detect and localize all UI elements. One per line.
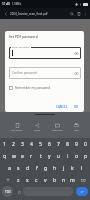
staticText: t xyxy=(40,153,42,160)
button[interactable]: Emoji xyxy=(16,189,22,195)
button[interactable]: c xyxy=(32,174,41,186)
button[interactable]: t xyxy=(36,150,45,162)
staticText: f xyxy=(36,165,38,172)
button[interactable]: j xyxy=(59,162,68,174)
staticText: Enter password xyxy=(12,45,30,48)
staticText: 4 xyxy=(30,141,33,148)
button[interactable]: p xyxy=(81,150,90,162)
button[interactable]: 4 xyxy=(27,138,36,150)
staticText: o xyxy=(75,153,79,160)
button[interactable]: Show password xyxy=(73,70,79,76)
button[interactable]: h xyxy=(50,162,59,174)
button[interactable]: 0 xyxy=(81,138,90,150)
button[interactable]: 1 xyxy=(0,138,9,150)
staticText: OK xyxy=(74,105,79,109)
staticText: q xyxy=(3,153,7,160)
staticText: m xyxy=(70,177,75,184)
button[interactable]: Share xyxy=(33,123,41,132)
staticText: 1 xyxy=(3,141,6,148)
button[interactable]: o xyxy=(72,150,81,162)
staticText: l xyxy=(81,165,83,172)
staticText: 11:45 xyxy=(2,2,11,6)
staticText: g xyxy=(44,165,48,172)
staticText: n xyxy=(62,177,66,184)
button[interactable]: Bookmark xyxy=(75,10,82,17)
staticText: i xyxy=(67,153,69,160)
staticText: c xyxy=(35,177,38,184)
button[interactable]: d xyxy=(23,162,32,174)
button[interactable]: l xyxy=(77,162,86,174)
button[interactable]: f xyxy=(32,162,41,174)
button[interactable]: s xyxy=(14,162,23,174)
button[interactable]: OK xyxy=(72,103,81,111)
staticText: u xyxy=(57,153,61,160)
staticText: Share xyxy=(34,129,40,132)
button[interactable]: e xyxy=(18,150,27,162)
button[interactable]: k xyxy=(68,162,77,174)
staticText: j xyxy=(63,165,65,172)
staticText: x xyxy=(26,177,29,184)
button[interactable]: Open with xyxy=(51,123,64,132)
staticText: Open with xyxy=(52,129,63,132)
staticText: d xyxy=(26,165,30,172)
button[interactable]: Remember my password xyxy=(9,86,81,90)
staticText: k xyxy=(71,165,74,172)
staticText: 5 xyxy=(39,141,42,148)
button[interactable]: Enter xyxy=(76,187,88,196)
button[interactable]: ?123 xyxy=(2,186,13,197)
button[interactable]: Back xyxy=(2,10,9,17)
button[interactable]: x xyxy=(23,174,32,186)
staticText: 2024_Invoice_scan_final.pdf xyxy=(10,12,48,16)
button[interactable]: 5 xyxy=(36,138,45,150)
staticText: 2 xyxy=(12,141,15,148)
staticText: b xyxy=(53,177,57,184)
staticText: 0 xyxy=(84,141,87,148)
staticText: PDF Toolkit xyxy=(11,129,23,132)
button[interactable]: a xyxy=(5,162,14,174)
button[interactable]: 7 xyxy=(54,138,63,150)
staticText: h xyxy=(53,165,57,172)
button[interactable]: Show password xyxy=(73,50,79,56)
button[interactable]: i xyxy=(63,150,72,162)
staticText: 9 xyxy=(75,141,78,148)
staticText: z xyxy=(17,177,20,184)
staticText: 1.0KB/s xyxy=(12,2,22,6)
button[interactable]: u xyxy=(54,150,63,162)
button[interactable]: 9 xyxy=(72,138,81,150)
button[interactable]: m xyxy=(68,174,77,186)
staticText: a xyxy=(8,165,11,172)
button[interactable]: Search xyxy=(68,10,75,17)
staticText: 3 xyxy=(21,141,24,148)
button[interactable]: 6 xyxy=(45,138,54,150)
staticText: Set PDF password xyxy=(9,34,38,39)
staticText: 6 xyxy=(48,141,51,148)
button[interactable]: g xyxy=(41,162,50,174)
button[interactable]: q xyxy=(0,150,9,162)
button[interactable]: r xyxy=(27,150,36,162)
button[interactable]: Shift xyxy=(2,174,14,186)
button[interactable]: n xyxy=(59,174,68,186)
button[interactable]: y xyxy=(45,150,54,162)
staticText: 8 xyxy=(66,141,69,148)
staticText: r xyxy=(30,153,33,160)
button[interactable]: z xyxy=(14,174,23,186)
staticText: ?123 xyxy=(5,190,11,194)
staticText: CANCEL xyxy=(56,105,68,109)
staticText: Print xyxy=(74,129,79,132)
button[interactable]: w xyxy=(9,150,18,162)
button[interactable]: b xyxy=(50,174,59,186)
button[interactable]: Print xyxy=(73,123,80,132)
button[interactable]: Backspace xyxy=(77,174,89,186)
button[interactable]: 2 xyxy=(9,138,18,150)
staticText: w xyxy=(12,153,16,160)
button[interactable]: 8 xyxy=(63,138,72,150)
button[interactable]: 3 xyxy=(18,138,27,150)
button[interactable]: More options xyxy=(82,11,88,17)
staticText: y xyxy=(48,153,51,160)
staticText: v xyxy=(44,177,47,184)
staticText: Remember my password xyxy=(15,86,51,90)
button[interactable]: v xyxy=(41,174,50,186)
button[interactable]: PDF Toolkit xyxy=(10,123,24,132)
button[interactable]: CANCEL xyxy=(54,103,70,111)
